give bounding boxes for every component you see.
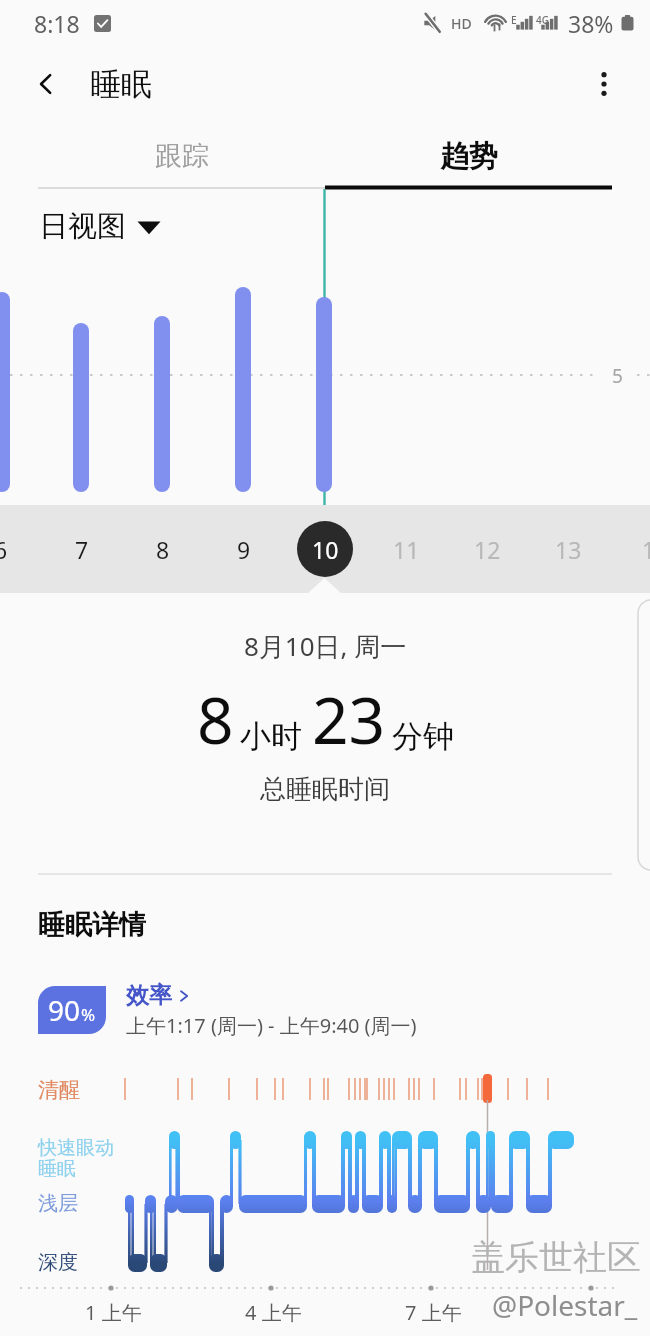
staticText: 盖乐世社区 — [471, 1236, 641, 1279]
staticText: 7 — [75, 534, 89, 565]
staticText: 效率 — [126, 981, 172, 1010]
staticText: 8 — [197, 676, 234, 763]
staticText: 上午1:17 (周一) - 上午9:40 (周一) — [126, 1012, 417, 1039]
staticText: 趋势 — [440, 138, 498, 175]
staticText: 11 — [393, 534, 420, 565]
button[interactable]: 1 — [620, 520, 650, 578]
button[interactable]: More options — [582, 62, 626, 106]
staticText: 10 — [312, 534, 339, 565]
button[interactable]: Back — [24, 62, 68, 106]
staticText: 5 — [612, 363, 623, 389]
staticText: 38% — [568, 8, 614, 39]
staticText: 深度 — [38, 1250, 78, 1275]
button[interactable]: 7 — [53, 520, 111, 578]
staticText: 1 上午 — [85, 1299, 142, 1326]
staticText: 7 上午 — [405, 1299, 462, 1326]
staticText: 清醒 — [38, 1077, 80, 1103]
staticText: 浅层 — [38, 1191, 78, 1216]
staticText: 6 — [0, 534, 8, 565]
staticText: 9 — [237, 534, 251, 565]
button[interactable]: 8 — [134, 520, 192, 578]
staticText: 睡眠详情 — [38, 908, 146, 942]
staticText: 12 — [474, 534, 501, 565]
button[interactable]: 日视图 — [39, 208, 161, 245]
staticText: 总睡眠时间 — [260, 773, 390, 806]
button[interactable]: 10 — [297, 521, 353, 577]
staticText: 睡眠 — [90, 65, 152, 104]
staticText: 23 — [312, 676, 386, 763]
staticText: 8月10日, 周一 — [244, 628, 407, 664]
button[interactable]: 90 — [38, 981, 417, 1039]
staticText: 1 — [642, 534, 650, 565]
staticText: 13 — [555, 534, 582, 565]
staticText: 分钟 — [392, 717, 454, 756]
staticText: 快速眼动 — [38, 1136, 114, 1160]
staticText: HD — [451, 14, 472, 33]
staticText: 小时 — [240, 717, 302, 756]
staticText: 8 — [156, 534, 170, 565]
staticText: 8:18 — [34, 8, 80, 39]
button[interactable]: 9 — [215, 520, 273, 578]
staticText: 睡眠 — [38, 1157, 76, 1181]
staticText: % — [81, 1003, 96, 1026]
button[interactable]: 跟踪 — [38, 124, 325, 188]
button[interactable]: 11 — [377, 520, 435, 578]
staticText: 4G — [536, 13, 549, 27]
button[interactable]: 12 — [458, 520, 516, 578]
staticText: E — [511, 13, 517, 27]
button[interactable]: 13 — [539, 520, 597, 578]
staticText: 跟踪 — [155, 139, 209, 173]
staticText: @Polestar_ — [492, 1286, 638, 1324]
staticText: 90 — [48, 991, 81, 1029]
button[interactable]: 6 — [0, 520, 30, 578]
button[interactable]: 趋势 — [325, 124, 612, 188]
staticText: 日视图 — [39, 208, 126, 245]
staticText: 4 上午 — [245, 1299, 302, 1326]
